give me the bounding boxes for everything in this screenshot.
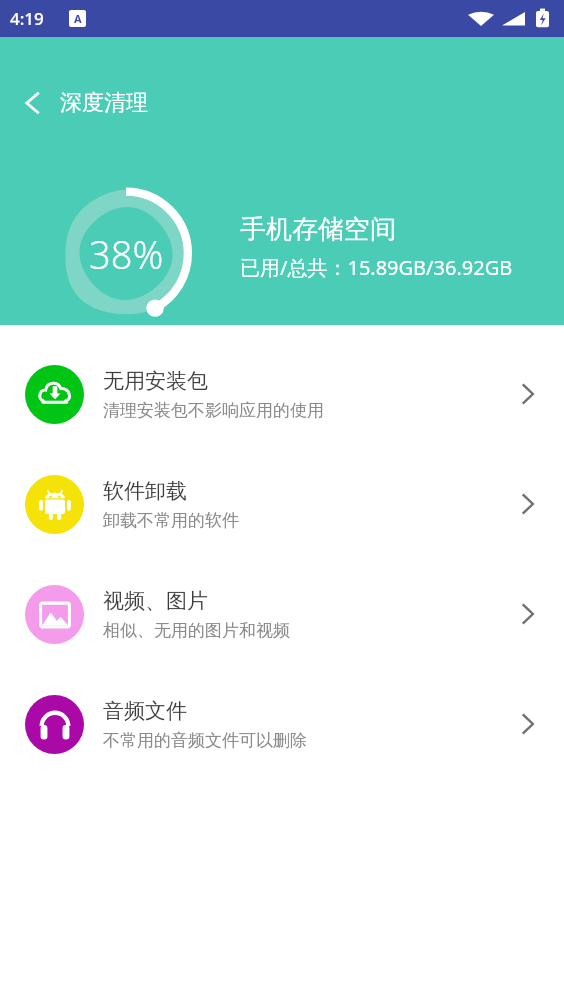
staticText: 清理安装包不影响应用的使用: [103, 400, 324, 421]
staticText: 音频文件: [103, 698, 187, 724]
button[interactable]: 无用安装包: [0, 339, 564, 449]
staticText: 手机存储空间: [240, 213, 396, 246]
other: Back: [20, 90, 46, 116]
staticText: 相似、无用的图片和视频: [103, 620, 290, 641]
staticText: 卸载不常用的软件: [103, 510, 239, 531]
button[interactable]: 音频文件: [0, 669, 564, 779]
staticText: 视频、图片: [103, 588, 208, 614]
button[interactable]: 视频、图片: [0, 559, 564, 669]
staticText: 已用/总共：15.89GB/36.92GB: [240, 254, 513, 281]
staticText: 不常用的音频文件可以删除: [103, 730, 307, 751]
button[interactable]: 软件卸载: [0, 449, 564, 559]
staticText: 深度清理: [60, 89, 148, 117]
button[interactable]: Back: [0, 85, 164, 121]
staticText: 38%: [89, 228, 164, 280]
staticText: 4:19: [10, 7, 44, 30]
staticText: 无用安装包: [103, 368, 208, 394]
staticText: 软件卸载: [103, 478, 187, 504]
staticText: A: [74, 11, 82, 26]
